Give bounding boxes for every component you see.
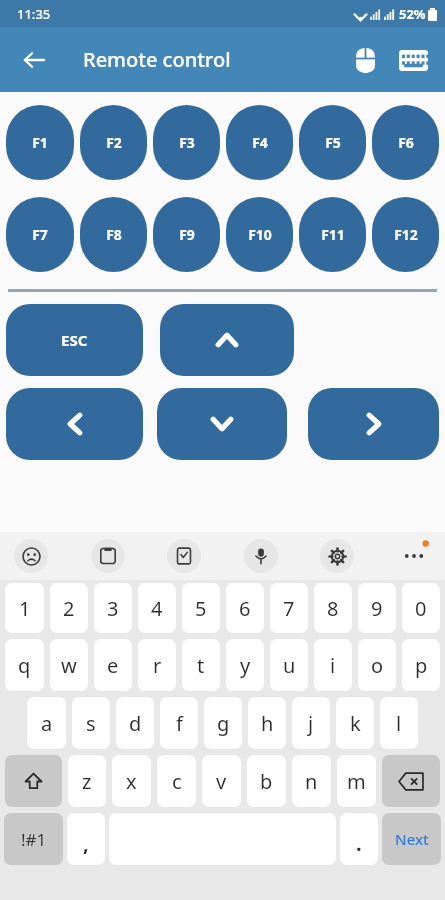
button[interactable]: Keyboard [389, 36, 437, 84]
button[interactable]: d [116, 697, 154, 749]
button[interactable]: 5 [182, 583, 220, 633]
button[interactable]: Shift [5, 755, 62, 807]
staticText: F1 [32, 133, 48, 152]
button[interactable]: c [157, 755, 196, 807]
button[interactable]: 4 [138, 583, 176, 633]
button[interactable]: s [72, 697, 110, 749]
button[interactable]: o [358, 639, 396, 691]
staticText: F12 [394, 225, 418, 244]
staticText: 52% [399, 5, 426, 23]
staticText: h [261, 710, 274, 737]
staticText: d [129, 710, 142, 737]
button[interactable]: Mouse [341, 36, 389, 84]
button[interactable]: Sticker [167, 539, 201, 573]
button[interactable]: F12 [372, 197, 439, 272]
button[interactable]: Emoji [14, 539, 48, 573]
button[interactable]: 9 [358, 583, 396, 633]
staticText: F6 [398, 133, 414, 152]
button[interactable]: b [247, 755, 286, 807]
button[interactable]: v [202, 755, 241, 807]
button[interactable]: f [160, 697, 198, 749]
button[interactable]: j [292, 697, 330, 749]
button[interactable]: 3 [94, 583, 132, 633]
staticText: t [197, 652, 205, 679]
staticText: . [356, 830, 362, 857]
staticText: F11 [321, 225, 345, 244]
staticText: x [126, 768, 137, 795]
staticText: 6 [239, 595, 251, 622]
button[interactable]: n [292, 755, 331, 807]
button[interactable]: !#1 [4, 813, 63, 865]
button[interactable]: Clipboard [91, 539, 125, 573]
button[interactable]: 0 [402, 583, 440, 633]
button[interactable]: u [270, 639, 308, 691]
button[interactable]: g [204, 697, 242, 749]
button[interactable]: t [182, 639, 220, 691]
button[interactable]: 6 [226, 583, 264, 633]
button[interactable]: r [138, 639, 176, 691]
staticText: F8 [106, 225, 122, 244]
button[interactable]: k [336, 697, 374, 749]
button[interactable]: ESC [6, 304, 143, 376]
staticText: b [260, 768, 273, 795]
button[interactable]: F4 [226, 105, 293, 180]
button[interactable]: F6 [372, 105, 439, 180]
button[interactable]: m [337, 755, 376, 807]
button[interactable]: 8 [314, 583, 352, 633]
button[interactable]: Left [6, 388, 143, 460]
button[interactable]: F8 [80, 197, 147, 272]
staticText: Next [395, 829, 429, 849]
staticText: 2 [63, 595, 75, 622]
button[interactable]: F9 [153, 197, 220, 272]
button[interactable]: i [314, 639, 352, 691]
staticText: k [350, 710, 361, 737]
button[interactable]: F10 [226, 197, 293, 272]
button[interactable]: h [248, 697, 286, 749]
button[interactable]: q [5, 639, 44, 691]
button[interactable]: Backspace [382, 755, 440, 807]
button[interactable]: Settings [320, 539, 354, 573]
staticText: 5 [195, 595, 207, 622]
staticText: j [308, 710, 314, 737]
staticText: v [216, 768, 227, 795]
button[interactable]: z [68, 755, 106, 807]
button[interactable]: F1 [6, 105, 74, 180]
button[interactable]: Back [10, 36, 58, 84]
button[interactable]: p [402, 639, 440, 691]
button[interactable]: F11 [299, 197, 366, 272]
button[interactable]: F7 [6, 197, 74, 272]
button[interactable]: l [380, 697, 418, 749]
button[interactable]: . [340, 813, 378, 865]
staticText: g [217, 710, 230, 737]
staticText: 0 [415, 595, 427, 622]
button[interactable]: x [112, 755, 151, 807]
staticText: m [347, 768, 366, 795]
staticText: s [86, 710, 96, 737]
button[interactable]: F2 [80, 105, 147, 180]
button[interactable]: F5 [299, 105, 366, 180]
staticText: q [18, 652, 31, 679]
staticText: 4 [151, 595, 163, 622]
button[interactable]: Right [308, 388, 439, 460]
staticText: a [41, 710, 53, 737]
button[interactable]: y [226, 639, 264, 691]
button[interactable]: F3 [153, 105, 220, 180]
button[interactable]: 7 [270, 583, 308, 633]
button[interactable]: Down [157, 388, 287, 460]
staticText: F5 [325, 133, 341, 152]
button[interactable]: 1 [5, 583, 44, 633]
staticText: u [283, 652, 296, 679]
button[interactable]: , [67, 813, 105, 865]
button[interactable]: Next [382, 813, 441, 865]
button[interactable]: Voice input [244, 539, 278, 573]
button[interactable]: a [27, 697, 66, 749]
button[interactable]: w [50, 639, 88, 691]
staticText: z [82, 768, 92, 795]
button[interactable]: e [94, 639, 132, 691]
button[interactable]: Up [160, 304, 294, 376]
staticText: F4 [252, 133, 268, 152]
button[interactable]: More options [397, 539, 431, 573]
staticText: l [396, 710, 402, 737]
button[interactable]: 2 [50, 583, 88, 633]
